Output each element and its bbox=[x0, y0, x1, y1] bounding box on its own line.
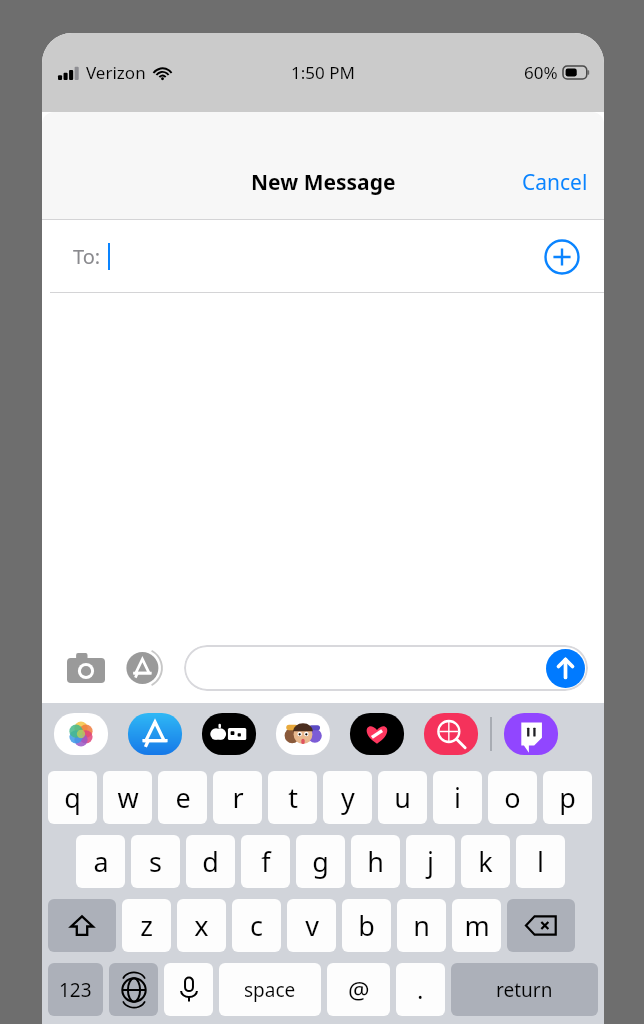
staticText: v bbox=[305, 907, 319, 944]
staticText: y bbox=[341, 779, 355, 816]
button[interactable]: t bbox=[268, 771, 317, 824]
staticText: f bbox=[261, 843, 271, 880]
staticText: c bbox=[250, 907, 263, 944]
staticText: 1:50 PM bbox=[291, 61, 355, 84]
button[interactable]: y bbox=[323, 771, 372, 824]
button[interactable]: Camera bbox=[64, 646, 108, 690]
staticText: r bbox=[232, 779, 244, 816]
button[interactable]: App bbox=[350, 713, 404, 755]
button[interactable]: App bbox=[54, 713, 108, 755]
staticText: s bbox=[149, 843, 162, 880]
button[interactable]: App bbox=[128, 713, 182, 755]
staticText: h bbox=[367, 843, 384, 880]
button[interactable]: space bbox=[219, 963, 321, 1016]
staticText: o bbox=[504, 779, 521, 816]
button[interactable]: App Store bbox=[122, 646, 166, 690]
button[interactable]: Send bbox=[184, 645, 588, 691]
staticText: e bbox=[175, 779, 191, 816]
button[interactable]: q bbox=[48, 771, 97, 824]
button[interactable]: h bbox=[351, 835, 400, 888]
button[interactable]: . bbox=[396, 963, 445, 1016]
button[interactable]: b bbox=[342, 899, 391, 952]
staticText: Verizon bbox=[86, 61, 146, 84]
staticText: m bbox=[464, 907, 490, 944]
button[interactable]: @ bbox=[327, 963, 390, 1016]
staticText: x bbox=[194, 907, 209, 944]
staticText: q bbox=[64, 779, 81, 816]
button[interactable]: r bbox=[213, 771, 262, 824]
staticText: a bbox=[93, 843, 109, 880]
staticText: l bbox=[537, 843, 544, 880]
button[interactable]: f bbox=[241, 835, 290, 888]
staticText: d bbox=[202, 843, 219, 880]
button[interactable]: Dictation bbox=[164, 963, 213, 1016]
button[interactable]: v bbox=[287, 899, 336, 952]
button[interactable]: Shift bbox=[48, 899, 116, 952]
staticText: b bbox=[358, 907, 375, 944]
staticText: i bbox=[454, 779, 461, 816]
button[interactable]: d bbox=[186, 835, 235, 888]
button[interactable]: z bbox=[122, 899, 171, 952]
staticText: w bbox=[117, 779, 139, 816]
button[interactable]: App bbox=[276, 713, 330, 755]
button[interactable]: Send bbox=[546, 649, 585, 688]
staticText: t bbox=[288, 779, 298, 816]
button[interactable]: App bbox=[424, 713, 478, 755]
staticText: n bbox=[413, 907, 430, 944]
staticText: u bbox=[394, 779, 411, 816]
staticText: Cancel bbox=[522, 168, 588, 197]
staticText: p bbox=[559, 779, 576, 816]
staticText: z bbox=[140, 907, 153, 944]
staticText: To: bbox=[73, 243, 101, 270]
staticText: 60% bbox=[524, 61, 558, 84]
button[interactable]: 123 bbox=[48, 963, 103, 1016]
button[interactable]: k bbox=[461, 835, 510, 888]
button[interactable]: a bbox=[76, 835, 125, 888]
button[interactable]: g bbox=[296, 835, 345, 888]
button[interactable]: To: bbox=[42, 220, 604, 293]
staticText: return bbox=[496, 977, 553, 1003]
staticText: j bbox=[427, 843, 434, 880]
staticText: k bbox=[478, 843, 493, 880]
staticText: New Message bbox=[251, 168, 396, 197]
staticText: @ bbox=[348, 973, 370, 1006]
button[interactable]: Cancel bbox=[506, 160, 604, 205]
button[interactable]: Change keyboard bbox=[109, 963, 158, 1016]
button[interactable]: n bbox=[397, 899, 446, 952]
button[interactable]: e bbox=[158, 771, 207, 824]
staticText: . bbox=[417, 973, 424, 1006]
button[interactable]: App bbox=[202, 713, 256, 755]
button[interactable]: c bbox=[232, 899, 281, 952]
button[interactable]: m bbox=[452, 899, 501, 952]
button[interactable]: j bbox=[406, 835, 455, 888]
button[interactable]: u bbox=[378, 771, 427, 824]
staticText: 123 bbox=[59, 977, 92, 1003]
button[interactable]: w bbox=[103, 771, 152, 824]
staticText: space bbox=[244, 977, 296, 1003]
button[interactable]: App bbox=[504, 713, 558, 755]
button[interactable]: p bbox=[543, 771, 592, 824]
button[interactable]: Delete bbox=[507, 899, 575, 952]
button[interactable]: i bbox=[433, 771, 482, 824]
button[interactable]: Add contact bbox=[544, 239, 580, 275]
staticText: g bbox=[312, 843, 329, 880]
button[interactable]: s bbox=[131, 835, 180, 888]
button[interactable]: l bbox=[516, 835, 565, 888]
button[interactable]: x bbox=[177, 899, 226, 952]
button[interactable]: o bbox=[488, 771, 537, 824]
button[interactable]: return bbox=[451, 963, 598, 1016]
